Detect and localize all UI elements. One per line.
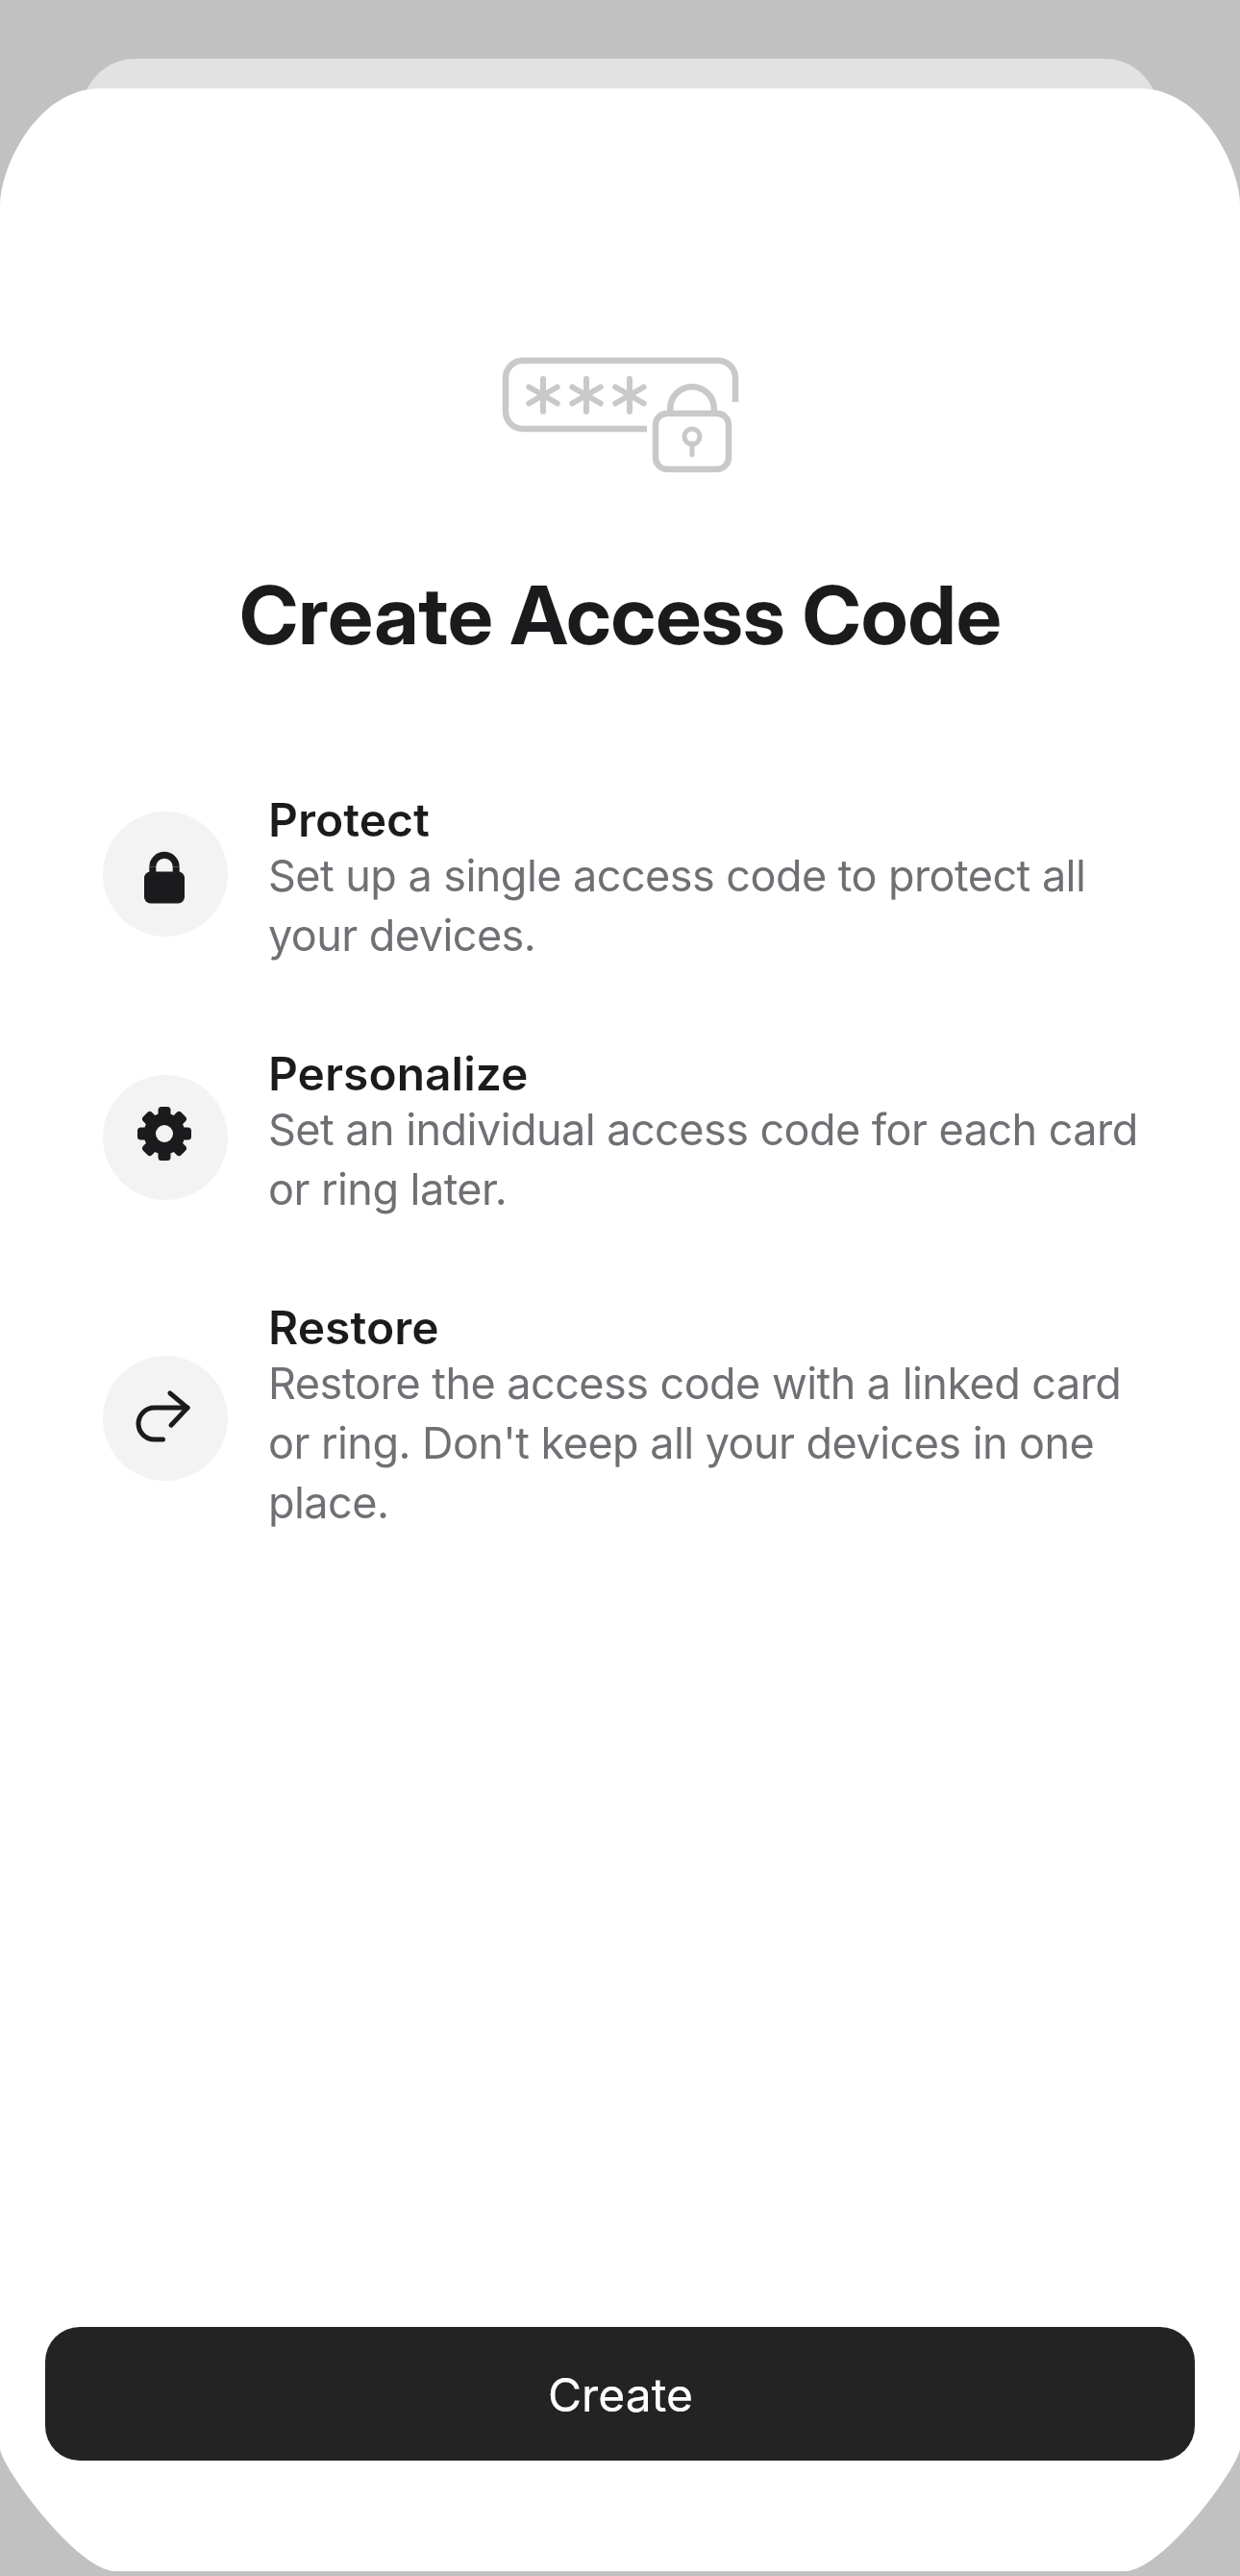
staticText: Restore the access code with a linked ca… <box>268 1357 1122 1528</box>
staticText: Restore <box>268 1299 439 1355</box>
button[interactable]: Protect <box>103 791 1086 961</box>
staticText: Create Access Code <box>239 566 1002 664</box>
button[interactable]: Restore <box>103 1299 1122 1528</box>
button[interactable]: Create <box>45 2327 1195 2461</box>
button[interactable]: Personalize <box>103 1045 1138 1214</box>
staticText: Protect <box>268 791 430 847</box>
staticText: Set up a single access code to protect a… <box>268 849 1086 961</box>
staticText: Personalize <box>268 1045 529 1101</box>
staticText: Set an individual access code for each c… <box>268 1103 1138 1214</box>
staticText: Create <box>548 2366 693 2422</box>
